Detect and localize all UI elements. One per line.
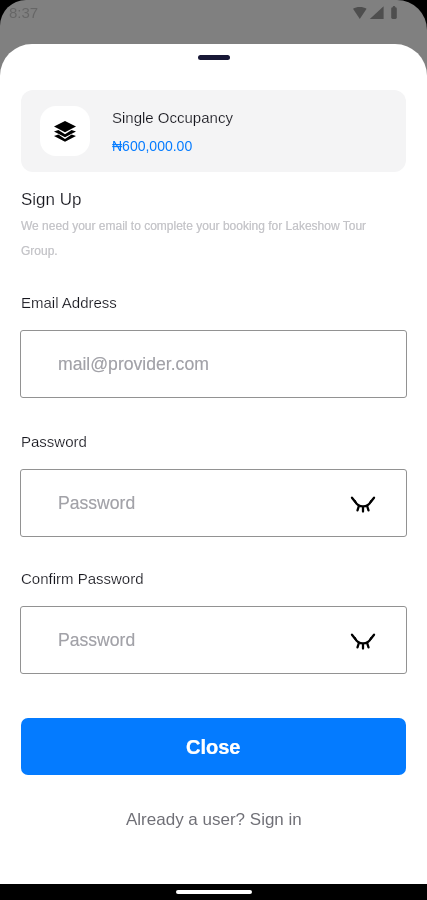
button[interactable]: Password (20, 606, 407, 674)
button[interactable]: Show password (349, 626, 377, 654)
staticText: Already a user? Sign in (126, 810, 302, 829)
button[interactable]: Password (20, 469, 407, 537)
button[interactable]: Show password (349, 489, 377, 517)
staticText: We need your email to complete your book… (21, 219, 406, 258)
staticText: Single Occupancy (112, 109, 233, 126)
staticText: Password (21, 433, 87, 450)
staticText: Password (58, 493, 136, 513)
button[interactable]: Already a user? Sign in (118, 806, 310, 833)
staticText: ₦600,000.00 (112, 138, 193, 154)
staticText: mail@provider.com (58, 354, 209, 374)
staticText: Email Address (21, 294, 117, 311)
staticText: Close (186, 736, 241, 758)
staticText: 8:37 (9, 4, 39, 21)
staticText: Confirm Password (21, 570, 144, 587)
staticText: Password (58, 630, 136, 650)
button[interactable]: Single Occupancy (21, 90, 406, 172)
button[interactable]: Close (21, 718, 406, 775)
staticText: Sign Up (21, 190, 82, 209)
button[interactable]: mail@provider.com (20, 330, 407, 398)
